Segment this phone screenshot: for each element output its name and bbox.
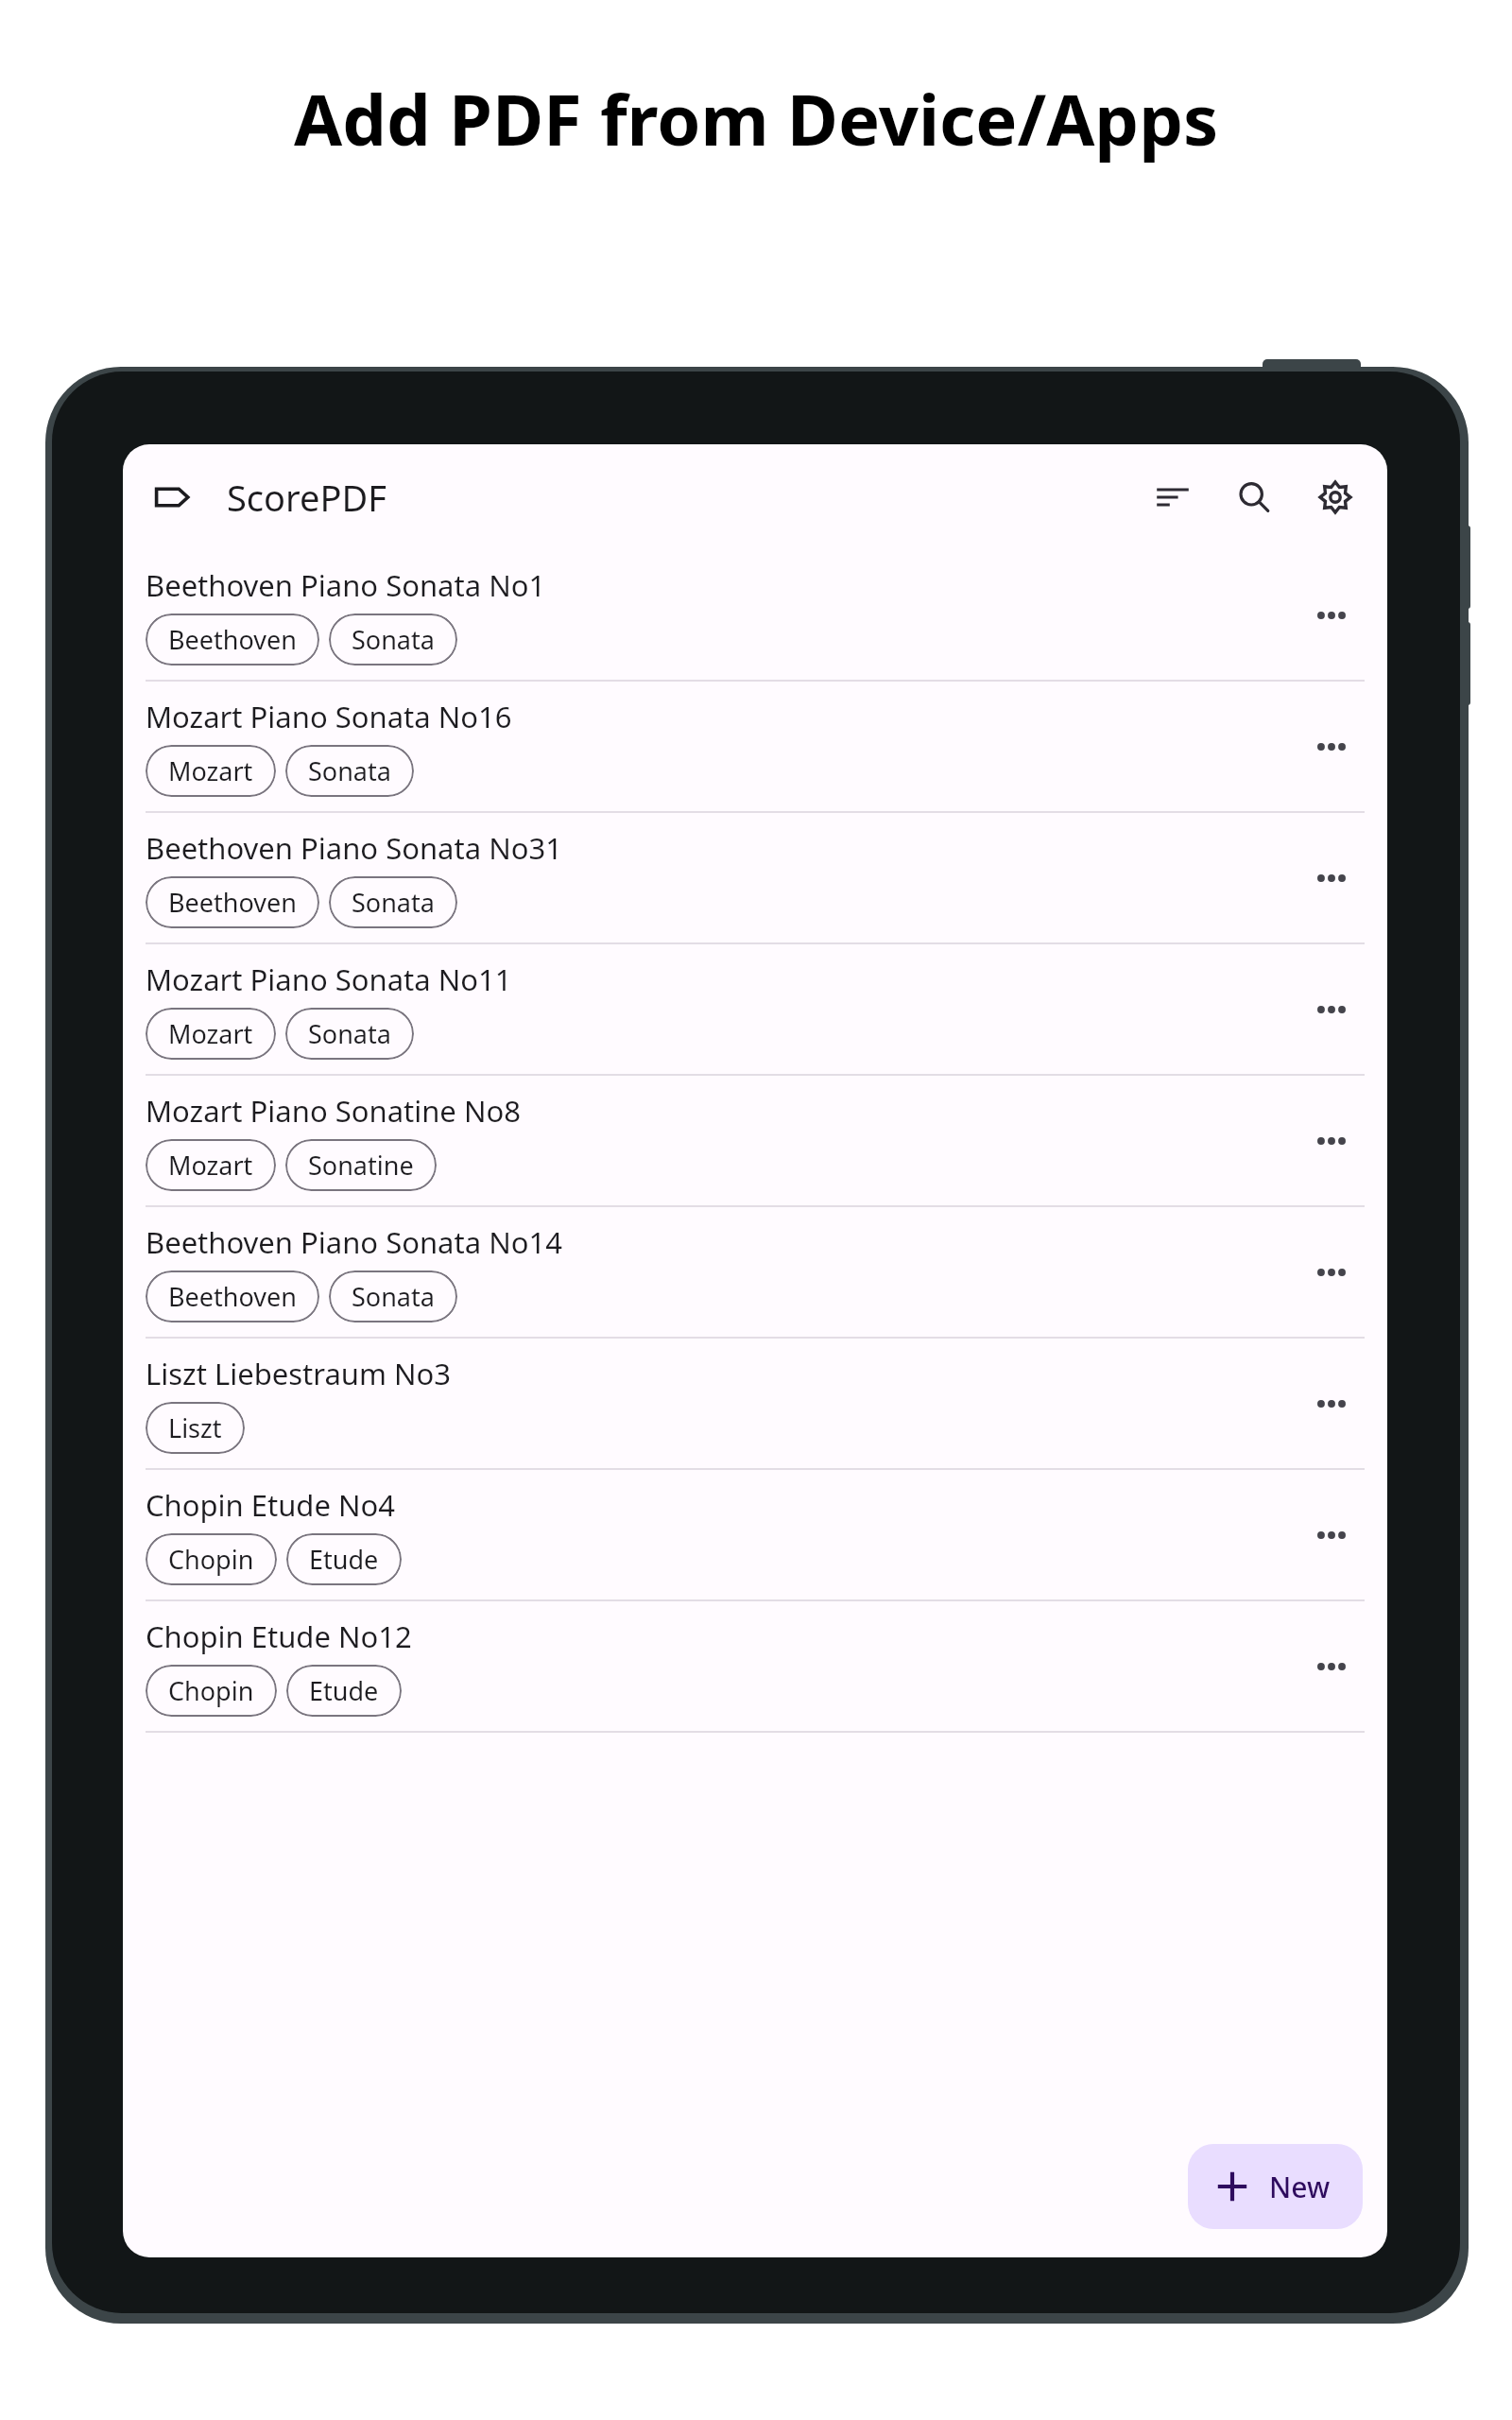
button[interactable]: More options — [1276, 1207, 1387, 1337]
staticText: Add PDF from Device/Apps — [294, 71, 1219, 166]
staticText: Chopin — [168, 1542, 254, 1577]
staticText: Mozart Piano Sonata No11 — [146, 959, 512, 999]
button[interactable]: Beethoven Piano Sonata No1 — [123, 550, 1387, 682]
button[interactable]: Beethoven Piano Sonata No31 — [123, 813, 1387, 944]
button[interactable]: Settings — [1302, 464, 1368, 530]
button[interactable]: Beethoven — [146, 876, 319, 928]
button[interactable]: Mozart Piano Sonata No11 — [123, 944, 1387, 1076]
staticText: Beethoven Piano Sonata No1 — [146, 565, 546, 605]
staticText: Etude — [309, 1542, 379, 1577]
staticText: Mozart — [168, 1148, 253, 1183]
staticText: Beethoven — [168, 622, 297, 657]
button[interactable]: Sonata — [329, 876, 457, 928]
button[interactable]: More options — [1276, 1601, 1387, 1731]
button[interactable]: Sonata — [329, 1270, 457, 1322]
button[interactable]: Liszt — [146, 1402, 245, 1454]
button[interactable]: More options — [1276, 1339, 1387, 1468]
button[interactable]: More options — [1276, 1470, 1387, 1599]
button[interactable]: More options — [1276, 682, 1387, 811]
staticText: Beethoven Piano Sonata No14 — [146, 1222, 562, 1262]
button[interactable]: Menu — [142, 467, 202, 527]
button[interactable]: Mozart Piano Sonatine No8 — [123, 1076, 1387, 1207]
staticText: Etude — [309, 1673, 379, 1708]
staticText: Sonata — [352, 622, 435, 657]
staticText: Liszt — [168, 1410, 222, 1445]
button[interactable]: Beethoven — [146, 1270, 319, 1322]
staticText: Beethoven Piano Sonata No31 — [146, 828, 562, 868]
button[interactable]: Sonata — [329, 614, 457, 665]
staticText: Mozart Piano Sonata No16 — [146, 697, 512, 736]
button[interactable]: Chopin — [146, 1665, 277, 1717]
staticText: Sonata — [352, 885, 435, 920]
button[interactable]: Sonatine — [285, 1139, 437, 1191]
button[interactable]: Sonata — [285, 1008, 414, 1060]
button[interactable]: Mozart — [146, 745, 276, 797]
button[interactable]: Liszt Liebestraum No3 — [123, 1339, 1387, 1470]
staticText: Mozart — [168, 753, 253, 788]
staticText: Beethoven — [168, 885, 297, 920]
button[interactable]: More options — [1276, 813, 1387, 942]
staticText: Chopin — [168, 1673, 254, 1708]
staticText: ScorePDF — [227, 473, 387, 522]
button[interactable]: Sonata — [285, 745, 414, 797]
staticText: Sonata — [308, 1016, 391, 1051]
button[interactable]: New — [1188, 2144, 1363, 2229]
button[interactable]: Chopin Etude No12 — [123, 1601, 1387, 1733]
button[interactable]: Beethoven — [146, 614, 319, 665]
staticText: Sonata — [308, 753, 391, 788]
staticText: Mozart Piano Sonatine No8 — [146, 1091, 521, 1131]
button[interactable]: More options — [1276, 1076, 1387, 1205]
button[interactable]: More options — [1276, 944, 1387, 1074]
button[interactable]: Search — [1221, 464, 1287, 530]
staticText: Liszt Liebestraum No3 — [146, 1354, 452, 1393]
staticText: Chopin Etude No4 — [146, 1485, 396, 1525]
staticText: Sonatine — [308, 1148, 414, 1183]
button[interactable]: Etude — [286, 1665, 402, 1717]
staticText: Beethoven — [168, 1279, 297, 1314]
button[interactable]: Sort — [1140, 464, 1206, 530]
button[interactable]: Mozart — [146, 1008, 276, 1060]
staticText: Mozart — [168, 1016, 253, 1051]
button[interactable]: Beethoven Piano Sonata No14 — [123, 1207, 1387, 1339]
button[interactable]: Mozart Piano Sonata No16 — [123, 682, 1387, 813]
button[interactable]: Chopin Etude No4 — [123, 1470, 1387, 1601]
staticText: New — [1269, 2168, 1331, 2206]
button[interactable]: Chopin — [146, 1533, 277, 1585]
button[interactable]: Mozart — [146, 1139, 276, 1191]
button[interactable]: More options — [1276, 550, 1387, 680]
staticText: Sonata — [352, 1279, 435, 1314]
staticText: Chopin Etude No12 — [146, 1616, 412, 1656]
button[interactable]: Etude — [286, 1533, 402, 1585]
